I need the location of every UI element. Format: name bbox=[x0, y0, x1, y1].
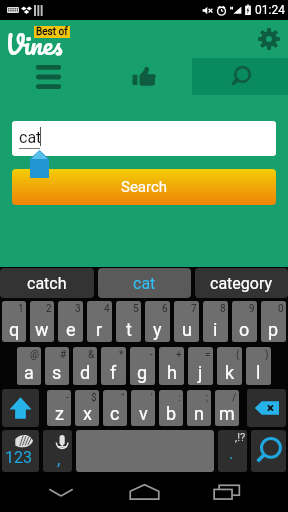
button[interactable]: Search bbox=[12, 169, 276, 205]
button[interactable]: Backspace bbox=[247, 389, 286, 427]
staticText: 5 bbox=[133, 303, 139, 315]
button[interactable]: 4 bbox=[87, 301, 112, 342]
button[interactable]: : bbox=[159, 390, 183, 426]
button[interactable]: Punctuation bbox=[218, 430, 247, 472]
staticText: i bbox=[213, 319, 218, 340]
staticText: b bbox=[166, 403, 177, 424]
button[interactable]: cat bbox=[12, 121, 276, 156]
button[interactable]: @ bbox=[17, 347, 41, 385]
staticText: n bbox=[194, 403, 204, 424]
staticText: ,!? bbox=[235, 431, 246, 444]
staticText: m bbox=[219, 403, 235, 424]
staticText: @ bbox=[30, 349, 39, 361]
button[interactable]: ' bbox=[131, 390, 155, 426]
button[interactable]: 7 bbox=[174, 301, 199, 342]
button[interactable]: + bbox=[159, 347, 184, 385]
staticText: 0 bbox=[278, 303, 284, 315]
button[interactable]: Menu bbox=[0, 58, 96, 95]
staticText: ) bbox=[265, 349, 269, 361]
button[interactable]: ) bbox=[246, 347, 271, 385]
staticText: h bbox=[167, 362, 177, 383]
button[interactable]: 1 bbox=[2, 301, 26, 342]
staticText: * bbox=[119, 349, 124, 361]
staticText: 9 bbox=[249, 303, 255, 315]
button[interactable]: Home bbox=[122, 475, 166, 509]
staticText: = bbox=[205, 349, 211, 361]
button[interactable]: = bbox=[188, 347, 213, 385]
button[interactable]: 8 bbox=[203, 301, 228, 342]
staticText: & bbox=[88, 349, 95, 361]
button[interactable]: Recents bbox=[205, 475, 249, 509]
staticText: p bbox=[268, 319, 279, 340]
button[interactable]: category bbox=[195, 268, 288, 298]
button[interactable]: Search bbox=[192, 58, 288, 95]
button[interactable]: 2 bbox=[30, 301, 54, 342]
staticText: 123 bbox=[5, 448, 32, 467]
button[interactable]: " bbox=[103, 390, 127, 426]
staticText: ( bbox=[236, 349, 240, 361]
button[interactable]: & bbox=[73, 347, 97, 385]
staticText: z bbox=[55, 403, 64, 424]
button[interactable]: - bbox=[47, 390, 71, 426]
staticText: u bbox=[182, 319, 192, 340]
staticText: Vines bbox=[5, 22, 63, 60]
staticText: 01:24 bbox=[255, 3, 285, 17]
button[interactable]: # bbox=[45, 347, 69, 385]
staticText: r bbox=[96, 319, 103, 340]
staticText: catch bbox=[27, 274, 67, 293]
button[interactable]: 5 bbox=[116, 301, 141, 342]
staticText: cat bbox=[133, 274, 156, 293]
button[interactable]: cat bbox=[98, 268, 191, 298]
button[interactable]: * bbox=[101, 347, 126, 385]
staticText: Best of bbox=[36, 26, 68, 38]
staticText: - bbox=[66, 392, 69, 404]
button[interactable]: 9 bbox=[232, 301, 257, 342]
staticText: 7 bbox=[191, 303, 197, 315]
staticText: cat bbox=[19, 128, 42, 147]
staticText: v bbox=[139, 403, 148, 424]
button[interactable]: 0 bbox=[261, 301, 286, 342]
button[interactable]: ( bbox=[217, 347, 242, 385]
staticText: a bbox=[24, 362, 34, 383]
button[interactable]: 3 bbox=[58, 301, 83, 342]
button[interactable]: Numbers bbox=[2, 430, 39, 472]
staticText: w bbox=[35, 319, 49, 340]
staticText: y bbox=[153, 319, 162, 340]
button[interactable]: $ bbox=[75, 390, 99, 426]
staticText: g bbox=[137, 362, 148, 383]
staticText: x bbox=[83, 403, 92, 424]
button[interactable]: Shift bbox=[2, 389, 39, 427]
staticText: : bbox=[178, 392, 181, 404]
button[interactable]: catch bbox=[0, 268, 94, 298]
staticText: ; bbox=[206, 392, 209, 404]
staticText: f bbox=[110, 362, 117, 383]
staticText: t bbox=[126, 319, 132, 340]
button[interactable]: - bbox=[130, 347, 155, 385]
button[interactable]: Back bbox=[39, 475, 83, 509]
staticText: d bbox=[80, 362, 91, 383]
staticText: c bbox=[110, 403, 120, 424]
staticText: 4 bbox=[104, 303, 110, 315]
staticText: q bbox=[9, 319, 20, 340]
button[interactable]: Search bbox=[251, 430, 286, 472]
staticText: 1 bbox=[18, 303, 24, 315]
staticText: category bbox=[210, 274, 273, 293]
staticText: 8 bbox=[220, 303, 226, 315]
button[interactable]: Settings bbox=[257, 27, 281, 51]
staticText: e bbox=[66, 319, 76, 340]
staticText: , bbox=[57, 449, 61, 469]
staticText: 2 bbox=[46, 303, 52, 315]
staticText: - bbox=[150, 349, 153, 361]
button[interactable]: Likes bbox=[96, 58, 192, 95]
staticText: + bbox=[176, 349, 182, 361]
staticText: ' bbox=[151, 392, 153, 404]
button[interactable]: / bbox=[215, 390, 239, 426]
staticText: k bbox=[225, 362, 235, 383]
staticText: # bbox=[60, 349, 67, 361]
staticText: o bbox=[239, 319, 250, 340]
button[interactable]: ; bbox=[187, 390, 211, 426]
staticText: 3 bbox=[75, 303, 81, 315]
button[interactable]: Voice input bbox=[43, 430, 72, 472]
button[interactable]: 6 bbox=[145, 301, 170, 342]
